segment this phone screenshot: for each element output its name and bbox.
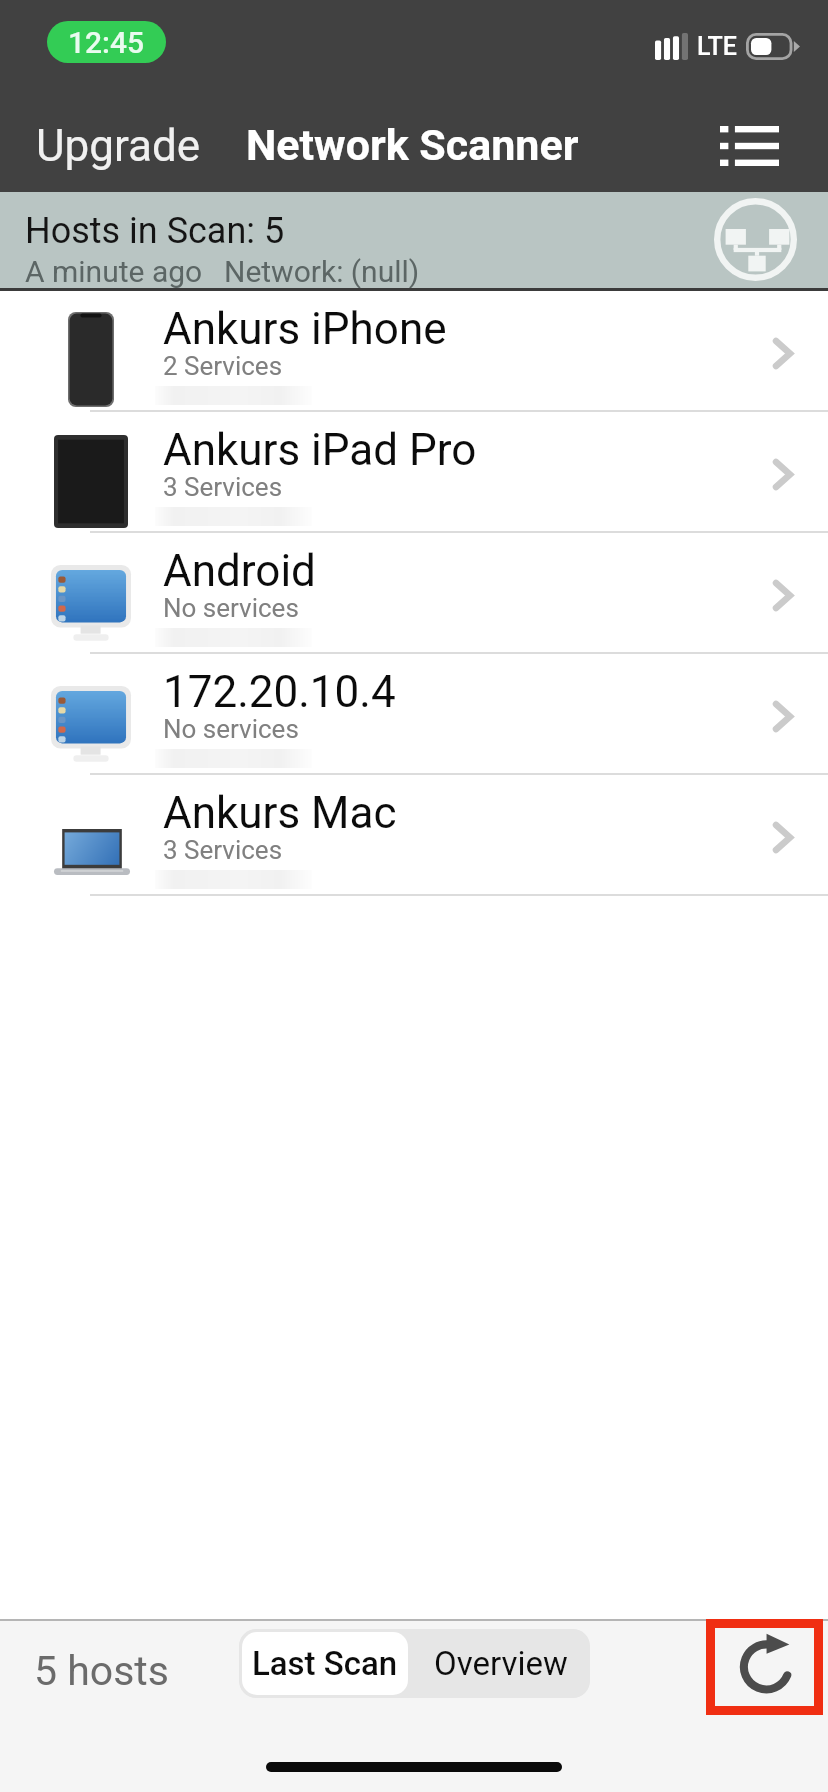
staticText: 2 Services xyxy=(163,351,283,381)
button[interactable]: Menu xyxy=(700,106,799,186)
staticText: Network: (null) xyxy=(224,254,420,289)
staticText: LTE xyxy=(697,32,737,61)
staticText: Upgrade xyxy=(36,120,201,172)
staticText: No services xyxy=(163,714,299,744)
staticText: 3 Services xyxy=(163,835,283,865)
staticText: Android xyxy=(163,545,316,597)
staticText: Ankurs Mac xyxy=(163,787,397,839)
button[interactable]: Recording indicator 12:45 xyxy=(47,21,166,63)
staticText: Ankurs iPad Pro xyxy=(163,424,477,476)
button[interactable]: Network topology xyxy=(706,190,808,289)
staticText: 172.20.10.4 xyxy=(163,666,396,718)
staticText: A minute ago xyxy=(25,254,203,289)
staticText: 3 Services xyxy=(163,472,283,502)
staticText: Network Scanner xyxy=(246,120,579,170)
staticText: Last Scan xyxy=(252,1644,398,1683)
button[interactable]: 172.20.10.4 xyxy=(0,654,828,775)
button[interactable]: Ankurs Mac xyxy=(0,775,828,896)
button[interactable]: Ankurs iPhone xyxy=(0,291,828,412)
staticText: No services xyxy=(163,593,299,623)
button[interactable]: Overview xyxy=(411,1629,590,1698)
staticText: 5 hosts xyxy=(34,1647,169,1695)
staticText: Overview xyxy=(434,1644,568,1683)
button[interactable]: Refresh xyxy=(715,1628,814,1706)
staticText: Hosts in Scan: 5 xyxy=(25,210,285,252)
button[interactable]: Last Scan xyxy=(242,1632,408,1695)
button[interactable]: Ankurs iPad Pro xyxy=(0,412,828,533)
staticText: 12:45 xyxy=(68,25,145,60)
staticText: Ankurs iPhone xyxy=(163,303,447,355)
button[interactable]: Upgrade xyxy=(14,104,223,188)
button[interactable]: Android xyxy=(0,533,828,654)
